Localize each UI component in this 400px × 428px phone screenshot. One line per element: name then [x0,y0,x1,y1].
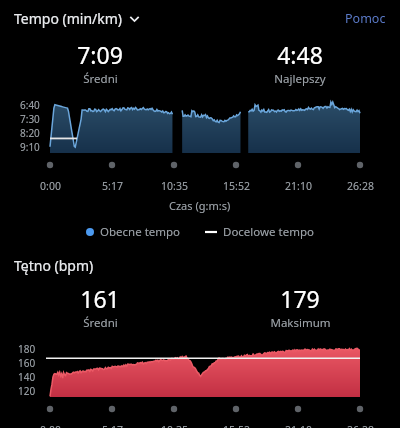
staticText: 21:10 [285,179,312,193]
staticText: 160 [18,356,36,370]
staticText: Tempo (min/km) [14,9,123,28]
staticText: Czas (g:m:s) [169,198,231,213]
staticText: 5:17 [102,179,123,193]
staticText: Pomoc [345,10,386,27]
staticText: 5:17 [102,423,123,428]
staticText: Maksimum [270,315,331,331]
staticText: 9:10 [20,140,40,151]
staticText: Średni [83,71,118,87]
staticText: 15:52 [223,179,250,193]
staticText: 21:10 [285,423,312,428]
staticText: 10:35 [161,423,188,428]
staticText: Obecne tempo [100,224,181,240]
staticText: 4:48 [277,39,323,70]
staticText: 140 [18,370,36,384]
staticText: Tętno (bpm) [14,256,94,275]
staticText: 0:00 [40,423,61,428]
button[interactable]: Pomoc [341,7,390,30]
button[interactable]: Tempo (min/km) [12,7,143,30]
staticText: 7:30 [20,112,40,126]
staticText: 120 [18,384,36,395]
staticText: 26:28 [347,179,374,193]
staticText: 180 [18,342,36,356]
staticText: Najlepszy [274,71,326,87]
staticText: 10:35 [161,179,188,193]
staticText: 0:00 [40,179,61,193]
staticText: 161 [80,283,120,314]
other: Change metric [128,12,141,25]
staticText: Średni [83,315,118,331]
staticText: 8:20 [20,126,40,140]
staticText: 15:52 [223,423,250,428]
staticText: 179 [280,283,320,314]
staticText: 26:28 [347,423,374,428]
staticText: 6:40 [20,98,40,112]
staticText: Docelowe tempo [223,224,314,240]
staticText: 7:09 [77,39,123,70]
